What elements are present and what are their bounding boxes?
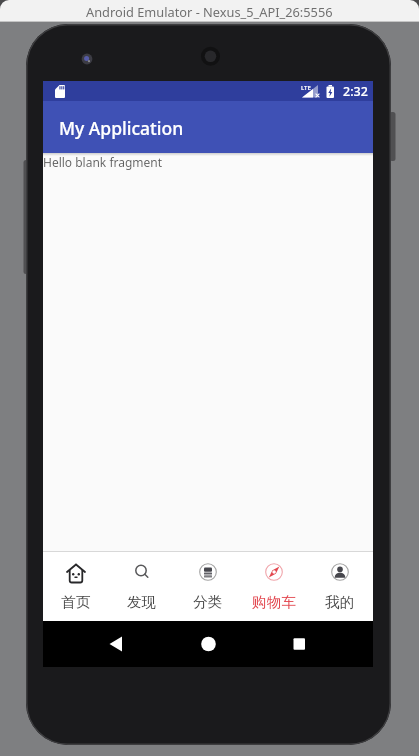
- staticText: Android Emulator - Nexus_5_API_26:5556: [86, 3, 333, 20]
- button[interactable]: 发现: [109, 552, 175, 621]
- staticText: 分类: [193, 593, 223, 611]
- button[interactable]: 我的: [307, 552, 373, 621]
- button[interactable]: [186, 621, 230, 667]
- button[interactable]: 首页: [43, 552, 109, 621]
- staticText: My Application: [59, 116, 184, 140]
- button[interactable]: [277, 621, 321, 667]
- staticText: 2:32: [343, 83, 368, 100]
- button[interactable]: 购物车: [241, 552, 307, 621]
- staticText: 购物车: [252, 593, 297, 611]
- button[interactable]: 分类: [175, 552, 241, 621]
- staticText: 发现: [127, 593, 157, 611]
- staticText: LTE: [301, 84, 311, 92]
- staticText: 我的: [325, 593, 355, 611]
- staticText: 首页: [61, 593, 91, 611]
- button[interactable]: [94, 621, 138, 667]
- staticText: Hello blank fragment: [43, 154, 163, 170]
